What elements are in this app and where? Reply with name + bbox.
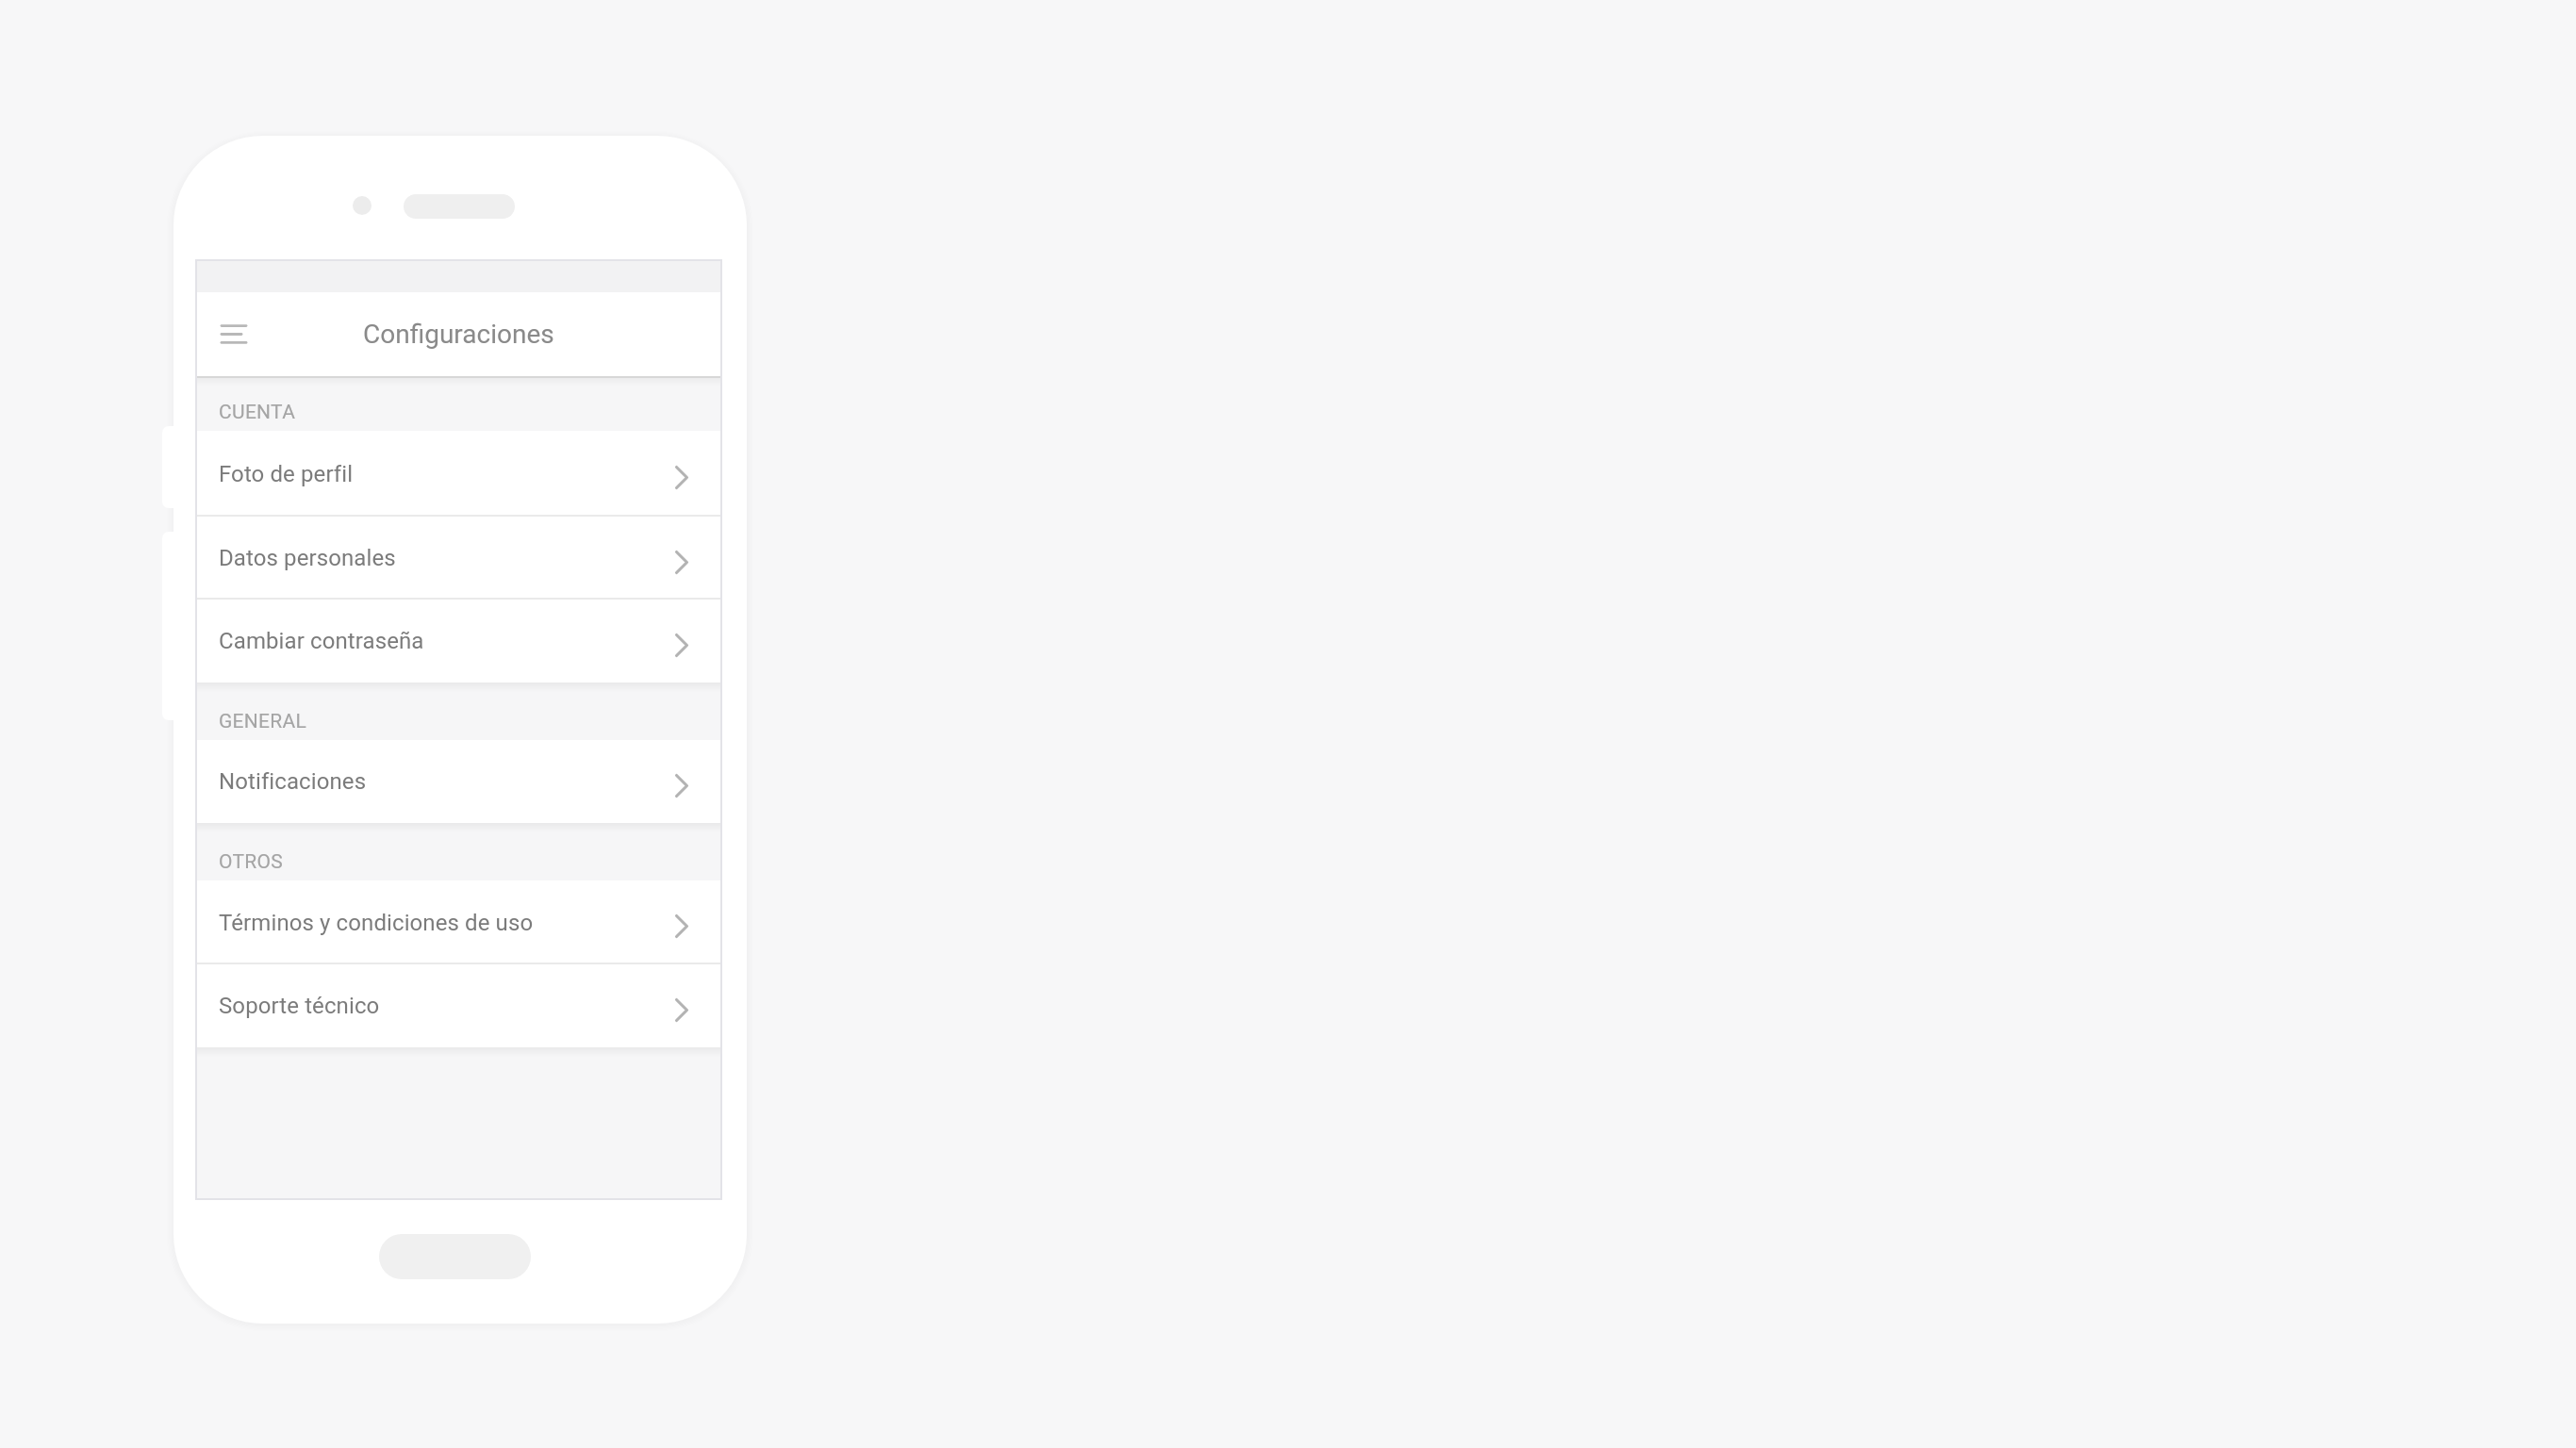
- staticText: Cambiar contraseña: [219, 628, 424, 654]
- staticText: Notificaciones: [219, 768, 367, 795]
- button[interactable]: Términos y condiciones de uso: [195, 880, 722, 964]
- staticText: Configuraciones: [363, 319, 554, 350]
- staticText: CUENTA: [219, 401, 296, 424]
- button[interactable]: Datos personales: [195, 517, 722, 600]
- button[interactable]: [211, 311, 256, 356]
- staticText: GENERAL: [219, 710, 307, 733]
- staticText: Datos personales: [219, 545, 396, 571]
- staticText: Foto de perfil: [219, 461, 354, 487]
- staticText: OTROS: [219, 850, 284, 874]
- button[interactable]: Soporte técnico: [195, 964, 722, 1047]
- button[interactable]: Foto de perfil: [195, 431, 722, 517]
- staticText: Términos y condiciones de uso: [219, 910, 534, 936]
- button[interactable]: Cambiar contraseña: [195, 600, 722, 683]
- button[interactable]: Notificaciones: [195, 740, 722, 823]
- staticText: Soporte técnico: [219, 993, 380, 1019]
